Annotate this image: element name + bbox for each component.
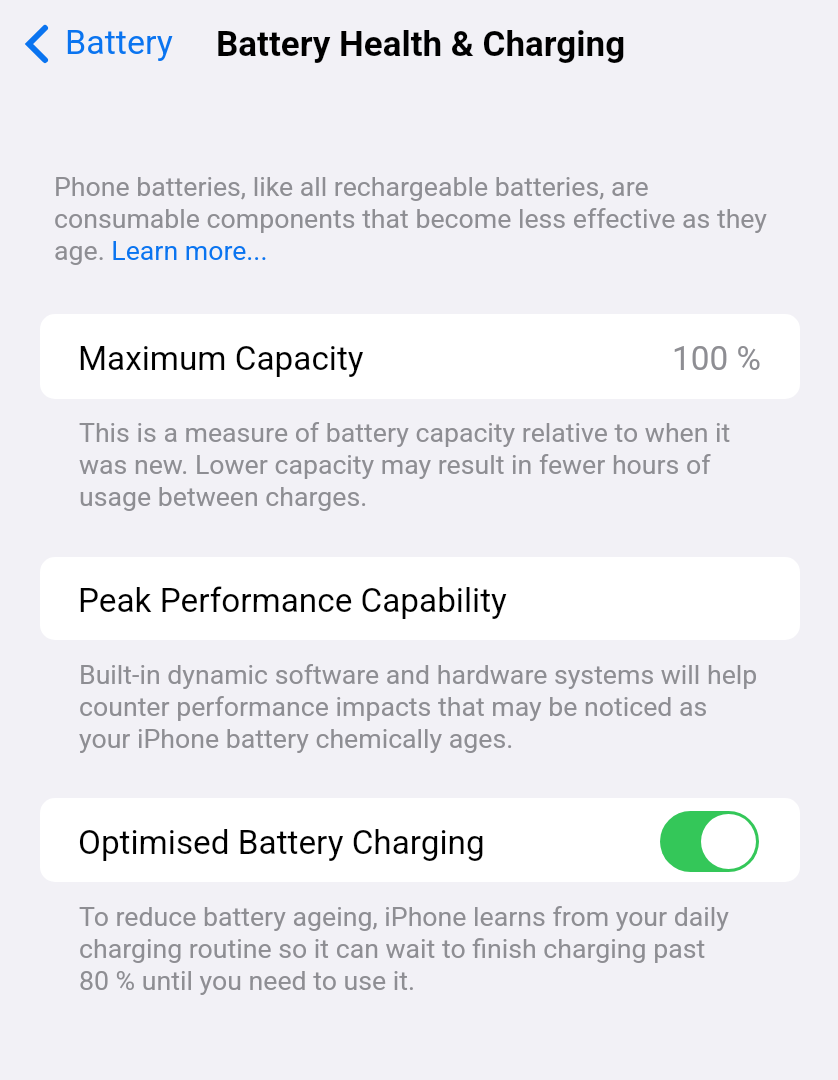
button[interactable]: Back to Battery — [22, 18, 177, 70]
button[interactable]: Peak Performance Capability — [40, 557, 800, 640]
staticText: Optimised Battery Charging — [78, 823, 485, 862]
staticText: To reduce battery ageing, iPhone learns … — [79, 901, 729, 997]
staticText: Phone batteries, like all rechargeable b… — [54, 171, 767, 267]
staticText: Battery — [65, 22, 173, 62]
button[interactable]: Optimised Battery Charging, on — [660, 811, 759, 872]
staticText: 100 % — [672, 339, 761, 378]
staticText: Maximum Capacity — [78, 339, 364, 378]
button[interactable]: Maximum Capacity — [40, 314, 800, 399]
staticText: Peak Performance Capability — [78, 581, 507, 620]
staticText: Battery Health & Charging — [216, 24, 626, 65]
staticText: Built-in dynamic software and hardware s… — [79, 659, 758, 755]
staticText: This is a measure of battery capacity re… — [79, 417, 731, 513]
button[interactable]: Optimised Battery Charging — [40, 798, 800, 882]
